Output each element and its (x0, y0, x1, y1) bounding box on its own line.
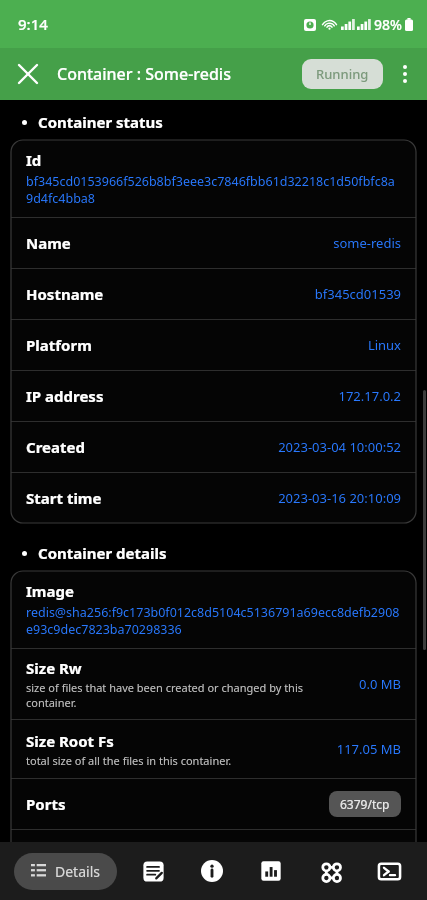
staticText: total size of all the files in this cont… (26, 753, 232, 768)
button[interactable]: Size Root Fs (11, 720, 416, 778)
button[interactable]: Logs (131, 849, 175, 893)
staticText: Hostname (26, 284, 104, 304)
button[interactable]: Id (11, 140, 416, 217)
button[interactable]: Processes (308, 849, 352, 893)
button[interactable]: Platform (11, 320, 416, 370)
staticText: 6379/tcp (340, 796, 390, 812)
button[interactable]: IP address (11, 371, 416, 421)
staticText: Container : Some-redis (57, 63, 231, 85)
staticText: 9:14 (18, 14, 48, 34)
staticText: Start time (26, 488, 102, 508)
staticText: Ports (26, 794, 329, 814)
staticText: Created (26, 437, 85, 457)
staticText: IP address (26, 386, 104, 406)
staticText: 2023-03-16 20:10:09 (278, 489, 401, 507)
button[interactable]: Name (11, 218, 416, 268)
staticText: Container details (38, 543, 167, 563)
staticText: 2023-03-04 10:00:52 (278, 438, 401, 456)
staticText: 117.05 MB (336, 740, 401, 758)
button[interactable]: Stats (249, 849, 293, 893)
staticText: some-redis (333, 234, 401, 252)
button[interactable]: Hostname (11, 269, 416, 319)
staticText: 0.0 MB (359, 675, 401, 693)
staticText: Details (55, 862, 100, 881)
staticText: Name (26, 233, 71, 253)
staticText: 172.17.0.2 (338, 387, 401, 405)
button[interactable]: Close (6, 52, 50, 96)
staticText: Container status (38, 112, 163, 132)
staticText: Id (26, 150, 42, 170)
button[interactable]: Info (190, 849, 234, 893)
staticText: redis@sha256:f9c173b0f012c8d5104c5136791… (26, 604, 401, 638)
staticText: bf345cd0153966f526b8bf3eee3c7846fbb61d32… (26, 173, 401, 207)
button[interactable]: Image (11, 571, 416, 648)
staticText: Running (316, 65, 369, 83)
staticText: bf345cd01539 (314, 285, 401, 303)
button[interactable]: Start time (11, 473, 416, 523)
staticText: 98% (374, 15, 402, 34)
button[interactable]: Created (11, 422, 416, 472)
button[interactable]: Size Rw (11, 649, 416, 719)
staticText: size of files that have been created or … (26, 680, 349, 710)
button[interactable]: Details (14, 853, 117, 890)
staticText: Image (26, 581, 74, 601)
staticText: Platform (26, 335, 92, 355)
button[interactable]: More options (385, 54, 425, 94)
staticText: Linux (367, 336, 401, 354)
staticText: Size Root Fs (26, 731, 114, 751)
button[interactable]: Terminal (367, 849, 411, 893)
button[interactable]: Running (302, 59, 383, 89)
staticText: Size Rw (26, 658, 82, 678)
button[interactable]: Ports (11, 779, 416, 829)
